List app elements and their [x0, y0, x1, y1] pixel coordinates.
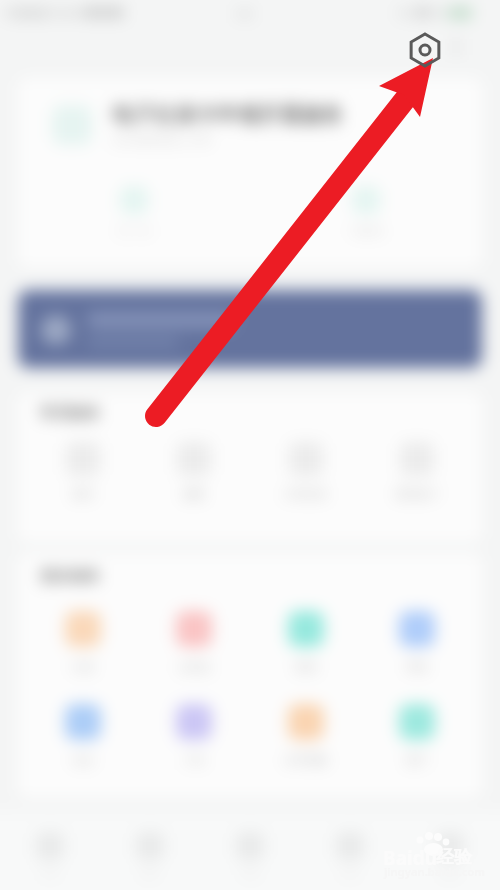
- button[interactable]: 扫一扫: [79, 182, 189, 242]
- button[interactable]: 社保: [37, 607, 129, 678]
- staticText: 常用服务: [40, 404, 100, 423]
- button[interactable]: 医疗: [371, 700, 463, 771]
- button[interactable]: 医保: [260, 607, 352, 678]
- button[interactable]: 缴费: [148, 438, 240, 505]
- button[interactable]: 查询: [37, 438, 129, 505]
- button[interactable]: 付款码: [311, 182, 421, 242]
- button[interactable]: 失业: [37, 700, 129, 771]
- button[interactable]: 服务: [100, 812, 200, 880]
- button[interactable]: 社区: [300, 812, 400, 880]
- button[interactable]: 消息: [200, 812, 300, 880]
- button[interactable]: 办理业务: [260, 438, 352, 505]
- button[interactable]: 电子社保卡申领开通服务: [18, 78, 482, 268]
- button[interactable]: 公积金: [148, 607, 240, 678]
- button[interactable]: Settings: [407, 32, 443, 68]
- button[interactable]: 工伤: [148, 700, 240, 771]
- staticText: 经验: [436, 846, 472, 869]
- staticText: 电子社保卡申领开通服务: [112, 102, 343, 128]
- button[interactable]: 首页: [0, 812, 100, 880]
- button[interactable]: 生育保险: [260, 700, 352, 771]
- staticText: 更多服务: [40, 567, 100, 586]
- button[interactable]: 养老: [371, 607, 463, 678]
- button[interactable]: 我的账户: [371, 438, 463, 505]
- button[interactable]: [18, 290, 482, 368]
